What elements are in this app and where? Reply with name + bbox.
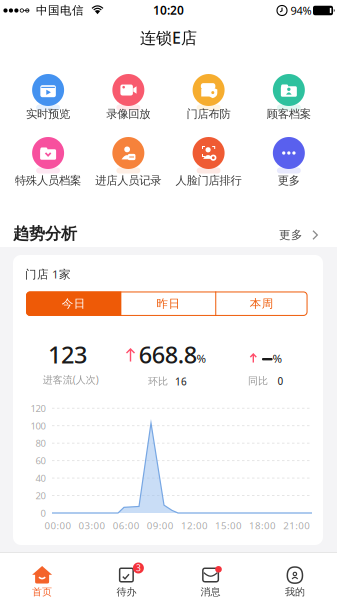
staticText: 待办 bbox=[116, 586, 136, 598]
button[interactable]: 录像回放 bbox=[88, 70, 168, 132]
button[interactable]: 顾客档案 bbox=[249, 70, 329, 132]
staticText: 今日 bbox=[62, 297, 86, 311]
staticText: 80 bbox=[35, 437, 45, 449]
staticText: 0 bbox=[277, 374, 283, 388]
staticText: 录像回放 bbox=[106, 107, 150, 121]
staticText: 15:00 bbox=[215, 519, 242, 532]
staticText: 环比 bbox=[148, 375, 168, 388]
button[interactable]: 首页 bbox=[7, 553, 77, 600]
staticText: 本周 bbox=[250, 297, 274, 311]
staticText: 中国电信 bbox=[36, 3, 84, 17]
button[interactable]: 消息 bbox=[176, 553, 246, 600]
staticText: 40 bbox=[35, 472, 45, 484]
staticText: 顾客档案 bbox=[267, 107, 311, 121]
button[interactable]: 本周 bbox=[216, 291, 307, 316]
staticText: % bbox=[196, 351, 206, 366]
button[interactable]: 特殊人员档案 bbox=[8, 133, 88, 195]
staticText: 趋势分析 bbox=[13, 224, 77, 244]
staticText: 门店布防 bbox=[187, 107, 231, 121]
staticText: 03:00 bbox=[79, 519, 106, 532]
staticText: 00:00 bbox=[44, 519, 71, 532]
button[interactable]: 更多 bbox=[249, 133, 329, 195]
staticText: 10:20 bbox=[153, 2, 184, 18]
button[interactable]: 昨日 bbox=[122, 291, 216, 316]
staticText: 进客流(人次) bbox=[43, 373, 99, 386]
staticText: 100 bbox=[30, 419, 45, 432]
button[interactable]: 实时预览 bbox=[8, 70, 88, 132]
staticText: 16 bbox=[175, 375, 187, 388]
staticText: 21:00 bbox=[283, 519, 310, 532]
staticText: 昨日 bbox=[157, 297, 181, 311]
staticText: 消息 bbox=[201, 586, 221, 598]
staticText: 12:00 bbox=[181, 519, 208, 532]
staticText: 我的 bbox=[285, 586, 305, 598]
staticText: 668.8 bbox=[139, 339, 197, 370]
staticText: 人脸门店排行 bbox=[176, 174, 242, 187]
button[interactable]: 待办 bbox=[91, 553, 161, 600]
button[interactable]: 进店人员记录 bbox=[88, 133, 168, 195]
staticText: % bbox=[272, 351, 282, 366]
staticText: 20 bbox=[35, 489, 45, 502]
staticText: 首页 bbox=[32, 586, 52, 598]
staticText: 09:00 bbox=[147, 519, 174, 532]
staticText: 特殊人员档案 bbox=[15, 174, 81, 187]
staticText: 连锁E店 bbox=[140, 27, 197, 48]
button[interactable]: 门店布防 bbox=[169, 70, 249, 132]
button[interactable]: 我的 bbox=[260, 553, 330, 600]
staticText: 同比 bbox=[248, 375, 268, 387]
staticText: 实时预览 bbox=[26, 107, 70, 121]
staticText: 进店人员记录 bbox=[95, 174, 161, 187]
staticText: 123 bbox=[48, 339, 87, 370]
staticText: 更多 bbox=[278, 174, 300, 187]
staticText: 3 bbox=[136, 562, 141, 574]
staticText: 60 bbox=[35, 454, 45, 467]
staticText: 更多 bbox=[279, 228, 303, 242]
button[interactable]: 今日 bbox=[27, 291, 121, 316]
button[interactable]: 人脸门店排行 bbox=[169, 133, 249, 195]
staticText: 18:00 bbox=[249, 519, 276, 532]
staticText: 94% bbox=[290, 3, 311, 18]
staticText: 0 bbox=[40, 507, 45, 519]
staticText: 06:00 bbox=[113, 519, 140, 532]
staticText: 120 bbox=[30, 402, 45, 414]
button[interactable]: 更多 bbox=[279, 225, 319, 245]
staticText: 门店 1家 bbox=[25, 266, 71, 282]
